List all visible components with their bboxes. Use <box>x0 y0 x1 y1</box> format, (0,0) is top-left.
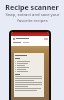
button[interactable]: App icon <box>13 36 48 41</box>
staticText: Snap, extract and save your favorite rec… <box>5 12 60 23</box>
staticText: Recipe scanner <box>5 2 59 12</box>
button[interactable]: Scan <box>44 38 48 40</box>
